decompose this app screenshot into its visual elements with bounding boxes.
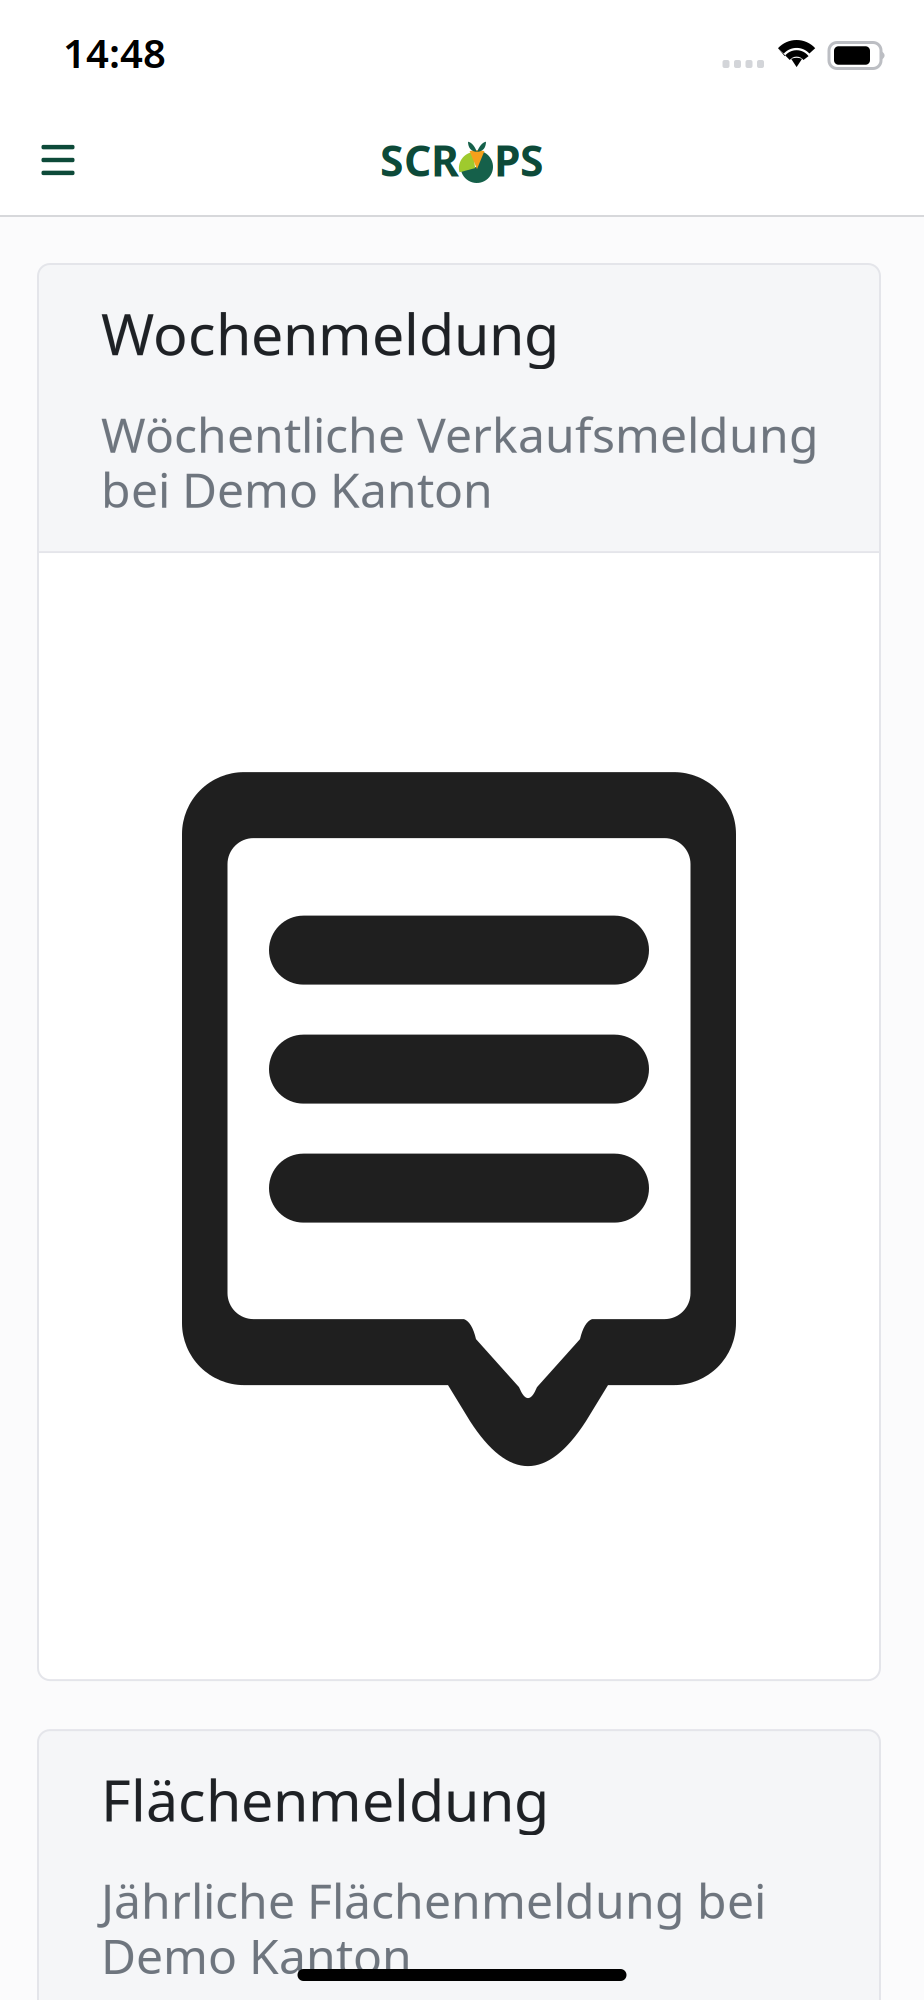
staticText: SCR (380, 132, 459, 188)
button[interactable]: Menu (22, 124, 94, 196)
staticText: Wöchentliche Verkaufsmeldung bei Demo Ka… (101, 402, 819, 521)
staticText: Wochenmeldung (101, 295, 559, 371)
staticText: PS (494, 132, 544, 188)
staticText: 14:48 (63, 26, 166, 79)
staticText: Jährliche Flächenmeldung bei Demo Kanton (101, 1868, 766, 1987)
button[interactable]: Flächenmeldung (38, 1730, 880, 2000)
staticText: Flächenmeldung (101, 1761, 549, 1837)
button[interactable]: Wochenmeldung (38, 264, 880, 1680)
